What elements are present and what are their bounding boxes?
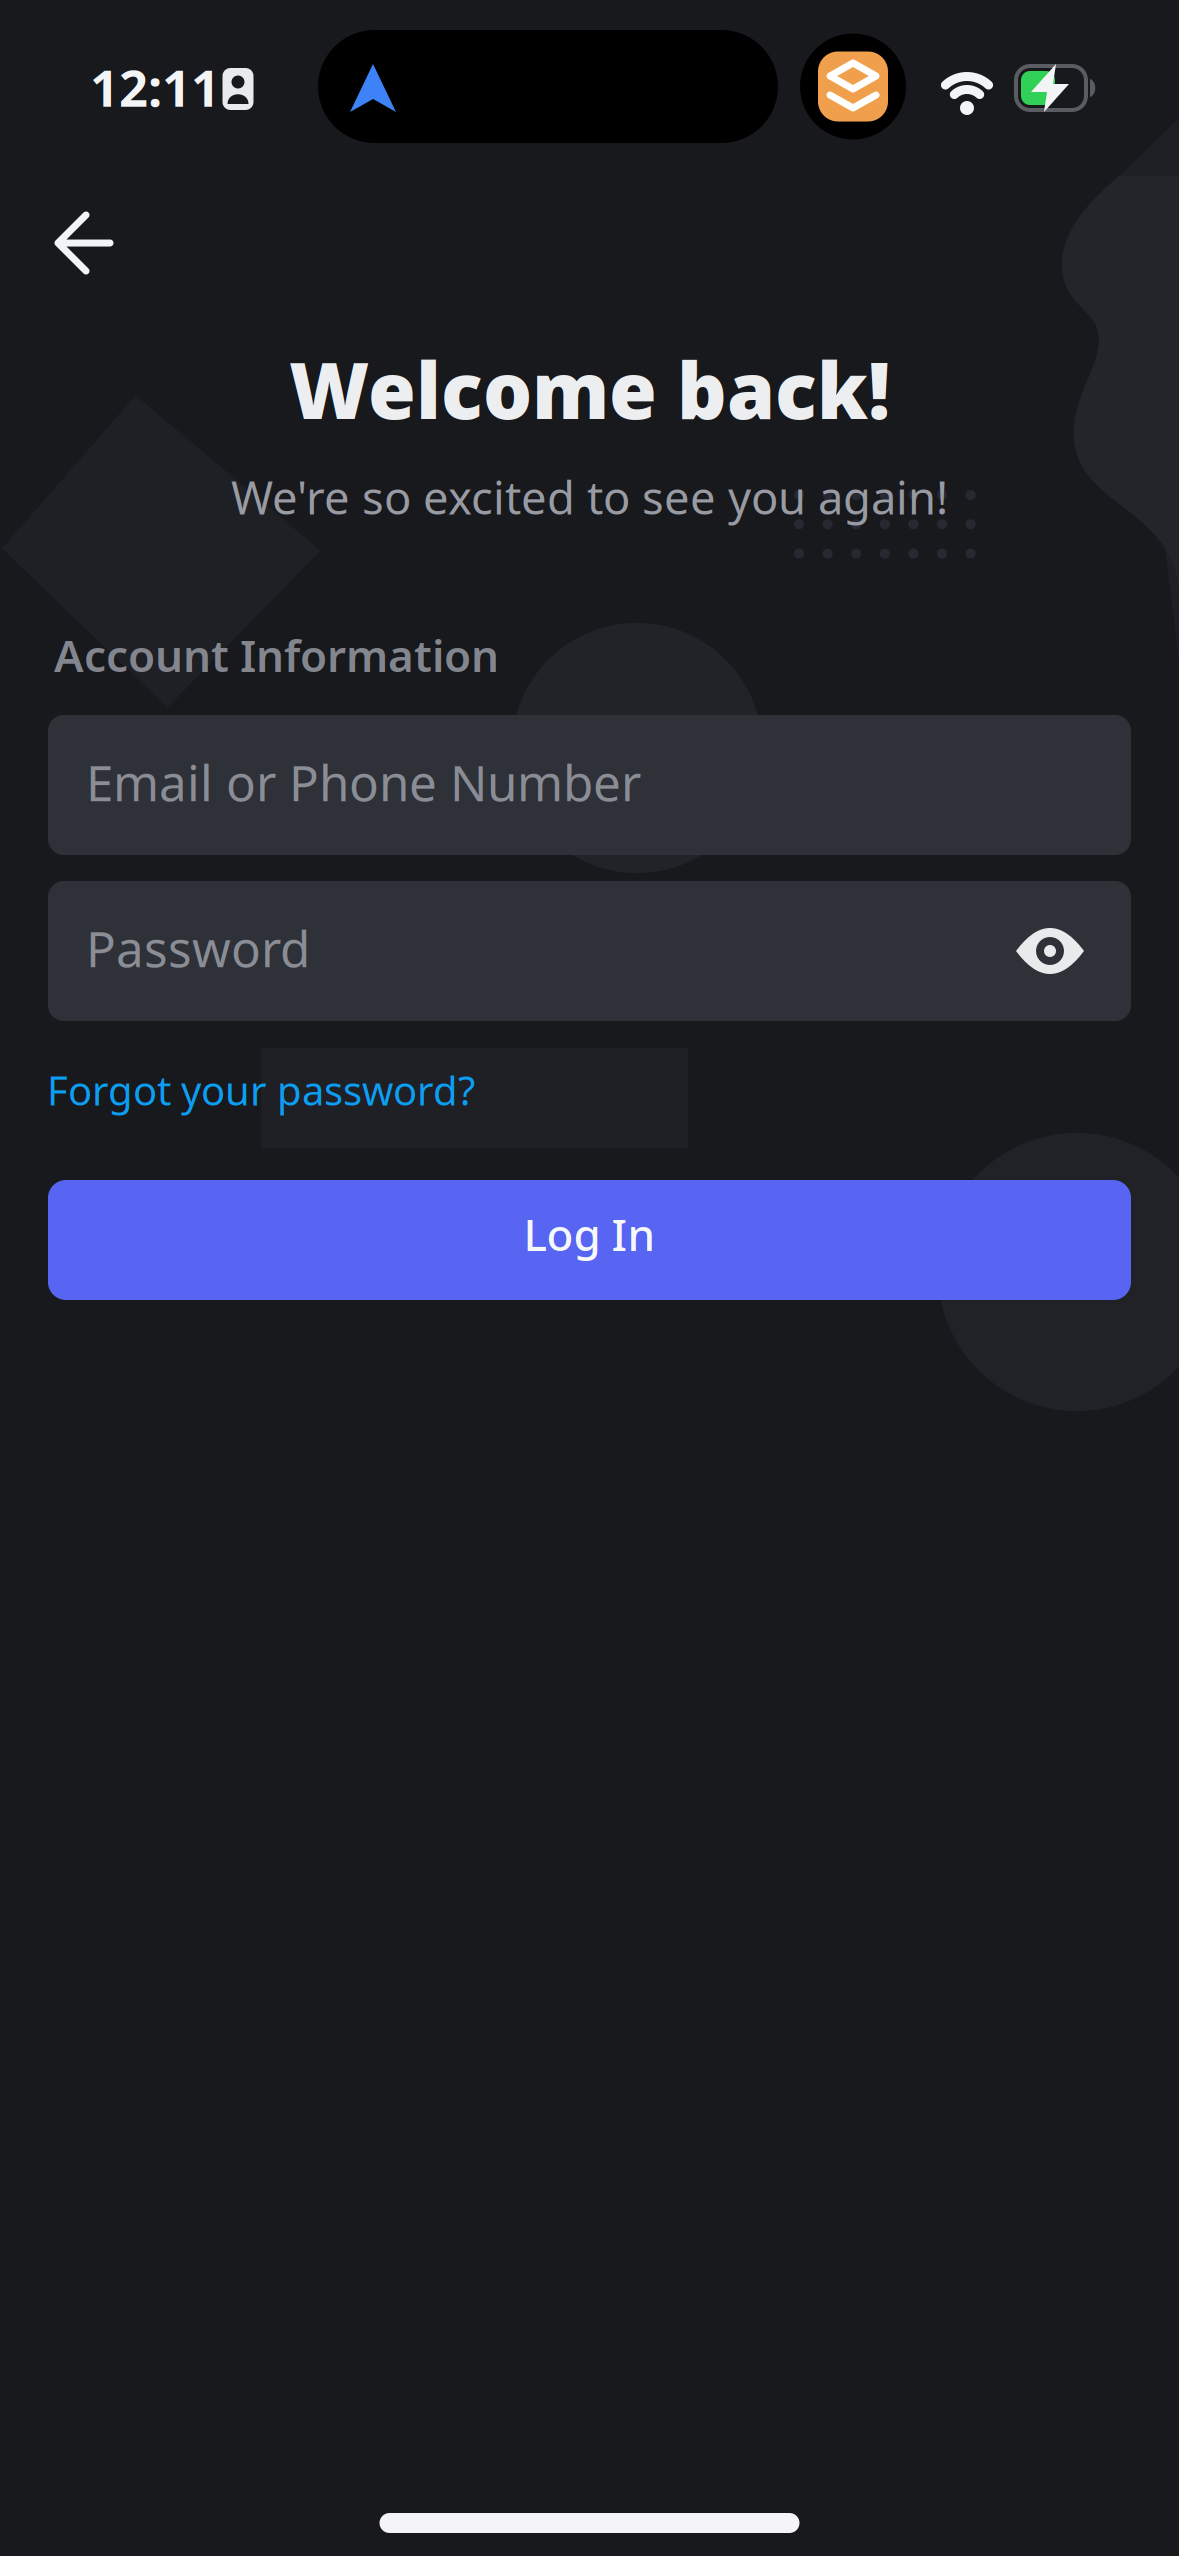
button[interactable]: Email or Phone Number [48, 715, 1131, 855]
staticText: Log In [523, 1205, 655, 1263]
button[interactable]: Password [48, 881, 1131, 1021]
button[interactable]: Back [34, 193, 134, 293]
staticText: Password [86, 915, 310, 981]
button[interactable]: Forgot your password? [47, 1063, 475, 1116]
staticText: Welcome back! [289, 338, 890, 440]
button[interactable]: Log In [48, 1180, 1131, 1300]
staticText: Account Information [54, 626, 499, 684]
staticText: We're so excited to see you again! [231, 467, 948, 527]
staticText: Email or Phone Number [86, 749, 641, 815]
staticText: 12:11 [90, 53, 220, 121]
staticText: Forgot your password? [47, 1063, 475, 1116]
